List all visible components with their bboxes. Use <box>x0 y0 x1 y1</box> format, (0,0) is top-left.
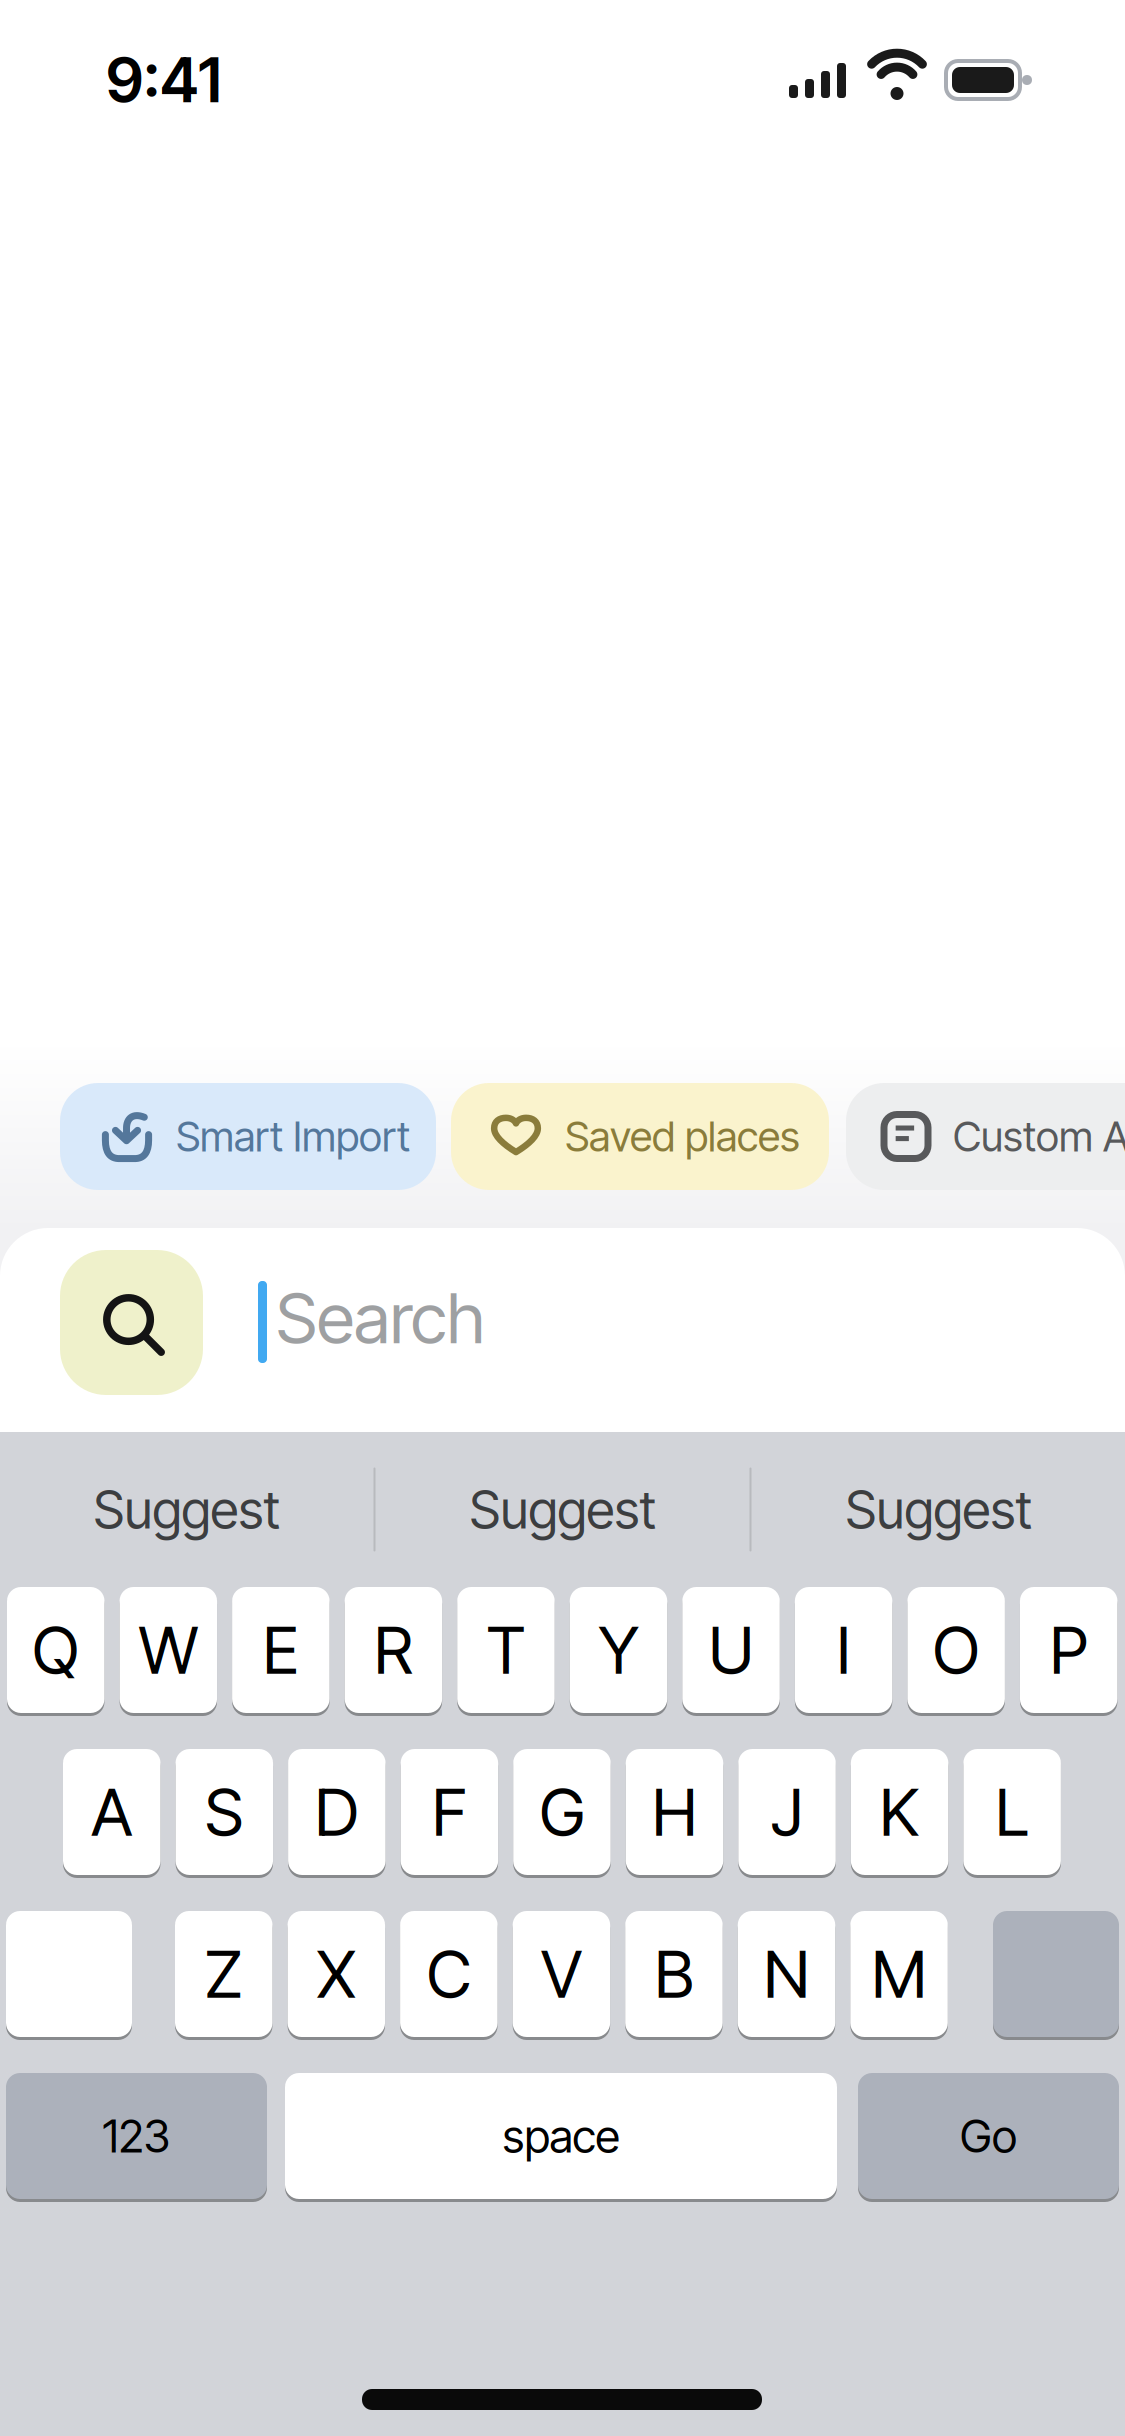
staticText: Q <box>32 1610 79 1689</box>
staticText: H <box>652 1772 697 1851</box>
button[interactable]: F <box>401 1749 498 1878</box>
staticText: D <box>315 1772 359 1851</box>
staticText: J <box>771 1772 803 1851</box>
button[interactable]: I <box>795 1587 892 1716</box>
staticText: F <box>432 1772 467 1851</box>
button[interactable]: R <box>345 1587 442 1716</box>
staticText: K <box>880 1772 920 1851</box>
button[interactable]: Suggest <box>751 1432 1125 1587</box>
button[interactable]: K <box>851 1749 948 1878</box>
button[interactable]: Suggest <box>375 1432 749 1587</box>
staticText: G <box>539 1772 584 1851</box>
staticText: Search <box>276 1276 485 1360</box>
button[interactable]: Smart Import <box>60 1083 436 1190</box>
button[interactable]: Saved places <box>451 1083 829 1190</box>
staticText: Go <box>960 2109 1017 2163</box>
staticText: L <box>995 1772 1029 1851</box>
button[interactable]: C <box>400 1911 498 2040</box>
button[interactable]: V <box>513 1911 610 2040</box>
staticText: P <box>1050 1610 1088 1689</box>
staticText: Y <box>598 1610 638 1689</box>
staticText: Z <box>205 1934 243 2013</box>
button[interactable]: Go <box>858 2073 1119 2202</box>
button[interactable]: E <box>232 1587 330 1716</box>
button[interactable]: N <box>738 1911 835 2040</box>
button[interactable]: Q <box>7 1587 104 1716</box>
staticText: S <box>205 1772 244 1851</box>
staticText: Suggest <box>845 1478 1031 1541</box>
button[interactable]: X <box>288 1911 385 2040</box>
button[interactable]: U <box>682 1587 780 1716</box>
staticText: I <box>837 1610 851 1689</box>
button[interactable]: L <box>963 1749 1061 1878</box>
button[interactable]: Delete <box>993 1911 1119 2040</box>
staticText: Suggest <box>469 1478 655 1541</box>
button[interactable]: Suggest <box>0 1432 373 1587</box>
staticText: E <box>263 1610 299 1689</box>
staticText: space <box>502 2109 619 2163</box>
staticText: X <box>317 1934 356 2013</box>
button[interactable]: B <box>625 1911 723 2040</box>
button[interactable]: G <box>513 1749 611 1878</box>
staticText: T <box>486 1610 525 1689</box>
staticText: Saved places <box>565 1111 800 1161</box>
button[interactable]: S <box>176 1749 273 1878</box>
button[interactable]: space <box>285 2073 837 2202</box>
staticText: C <box>427 1934 471 2013</box>
staticText: 9:41 <box>106 43 222 117</box>
button[interactable]: W <box>119 1587 217 1716</box>
button[interactable]: T <box>457 1587 555 1716</box>
button[interactable]: Y <box>570 1587 667 1716</box>
button[interactable]: Search <box>0 1228 1125 1518</box>
button[interactable]: J <box>738 1749 836 1878</box>
staticText: Suggest <box>93 1478 279 1541</box>
staticText: U <box>708 1610 753 1689</box>
staticText: V <box>541 1934 582 2013</box>
staticText: R <box>374 1610 413 1689</box>
button[interactable]: Z <box>175 1911 272 2040</box>
button[interactable]: Custom Areas <box>846 1083 1125 1190</box>
button[interactable]: M <box>850 1911 948 2040</box>
button[interactable]: H <box>626 1749 723 1878</box>
staticText: 123 <box>102 2109 170 2163</box>
staticText: B <box>654 1934 693 2013</box>
staticText: W <box>139 1610 198 1689</box>
staticText: M <box>871 1934 926 2013</box>
button[interactable]: P <box>1020 1587 1117 1716</box>
staticText: A <box>91 1772 132 1851</box>
button[interactable]: D <box>288 1749 386 1878</box>
staticText: N <box>763 1934 809 2013</box>
button[interactable]: O <box>907 1587 1005 1716</box>
staticText: O <box>933 1610 980 1689</box>
button[interactable]: A <box>63 1749 160 1878</box>
button[interactable]: 123 <box>6 2073 267 2202</box>
staticText: Custom Areas <box>953 1111 1125 1161</box>
button[interactable]: Shift <box>6 1911 132 2040</box>
staticText: Smart Import <box>176 1111 410 1161</box>
